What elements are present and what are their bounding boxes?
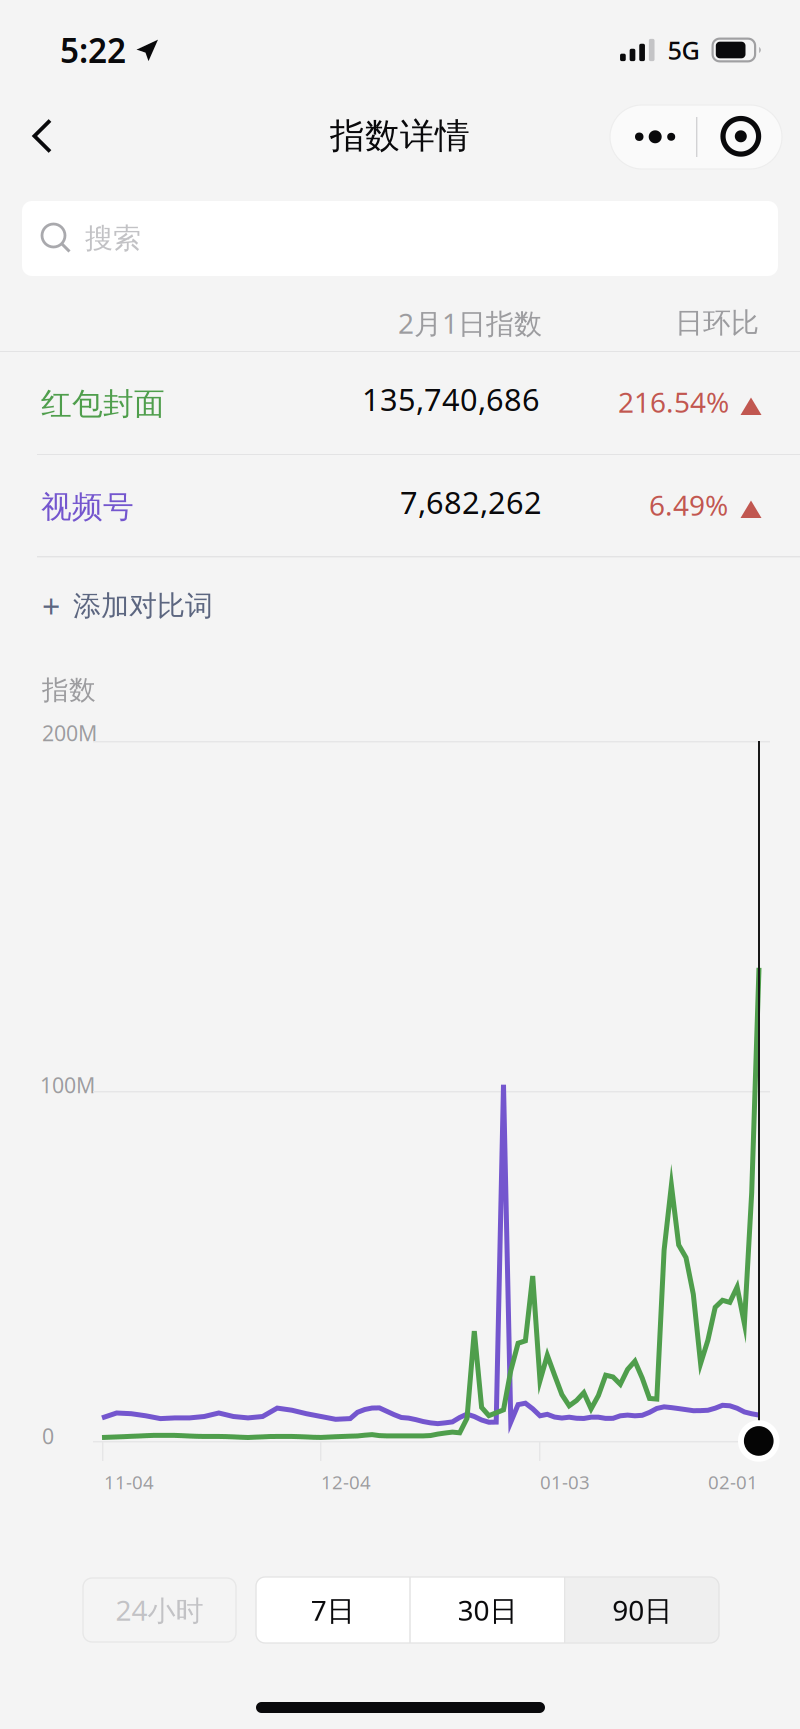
staticText: 24小时: [115, 1591, 203, 1629]
button[interactable]: 搜索: [22, 201, 778, 276]
staticText: 5G: [668, 33, 700, 67]
staticText: 红包封面: [41, 385, 165, 423]
button[interactable]: +: [0, 568, 400, 644]
staticText: 216.54%: [618, 383, 729, 421]
staticText: 7,682,262: [400, 482, 542, 522]
staticText: 30日: [457, 1591, 517, 1629]
button[interactable]: 7日: [256, 1577, 409, 1643]
staticText: 100M: [40, 1071, 95, 1099]
staticText: 135,740,686: [362, 379, 540, 419]
staticText: 7日: [311, 1591, 355, 1629]
staticText: 5:22: [60, 28, 126, 72]
staticText: 12-04: [321, 1470, 371, 1494]
staticText: 指数详情: [330, 115, 470, 157]
button[interactable]: 红包封面 135,740,686 216.54%: [0, 352, 800, 454]
staticText: 添加对比词: [73, 589, 213, 623]
staticText: 11-04: [104, 1470, 154, 1494]
button[interactable]: 30日: [411, 1577, 564, 1643]
staticText: 02-01: [708, 1470, 758, 1494]
button[interactable]: Back: [4, 98, 80, 174]
staticText: +: [42, 585, 60, 627]
staticText: 日环比: [675, 306, 759, 340]
staticText: 200M: [42, 719, 97, 747]
staticText: 指数: [42, 674, 96, 706]
staticText: 01-03: [540, 1470, 590, 1494]
staticText: 视频号: [41, 488, 134, 526]
staticText: 6.49%: [649, 486, 728, 524]
button[interactable]: 90日: [566, 1577, 719, 1643]
button[interactable]: 24小时: [83, 1578, 236, 1642]
button[interactable]: More options and close: [610, 105, 782, 169]
button[interactable]: 视频号 7,682,262 6.49%: [0, 455, 800, 557]
staticText: 90日: [612, 1591, 672, 1629]
staticText: 0: [42, 1422, 54, 1450]
staticText: 2月1日指数: [398, 304, 542, 342]
staticText: 搜索: [85, 221, 141, 256]
